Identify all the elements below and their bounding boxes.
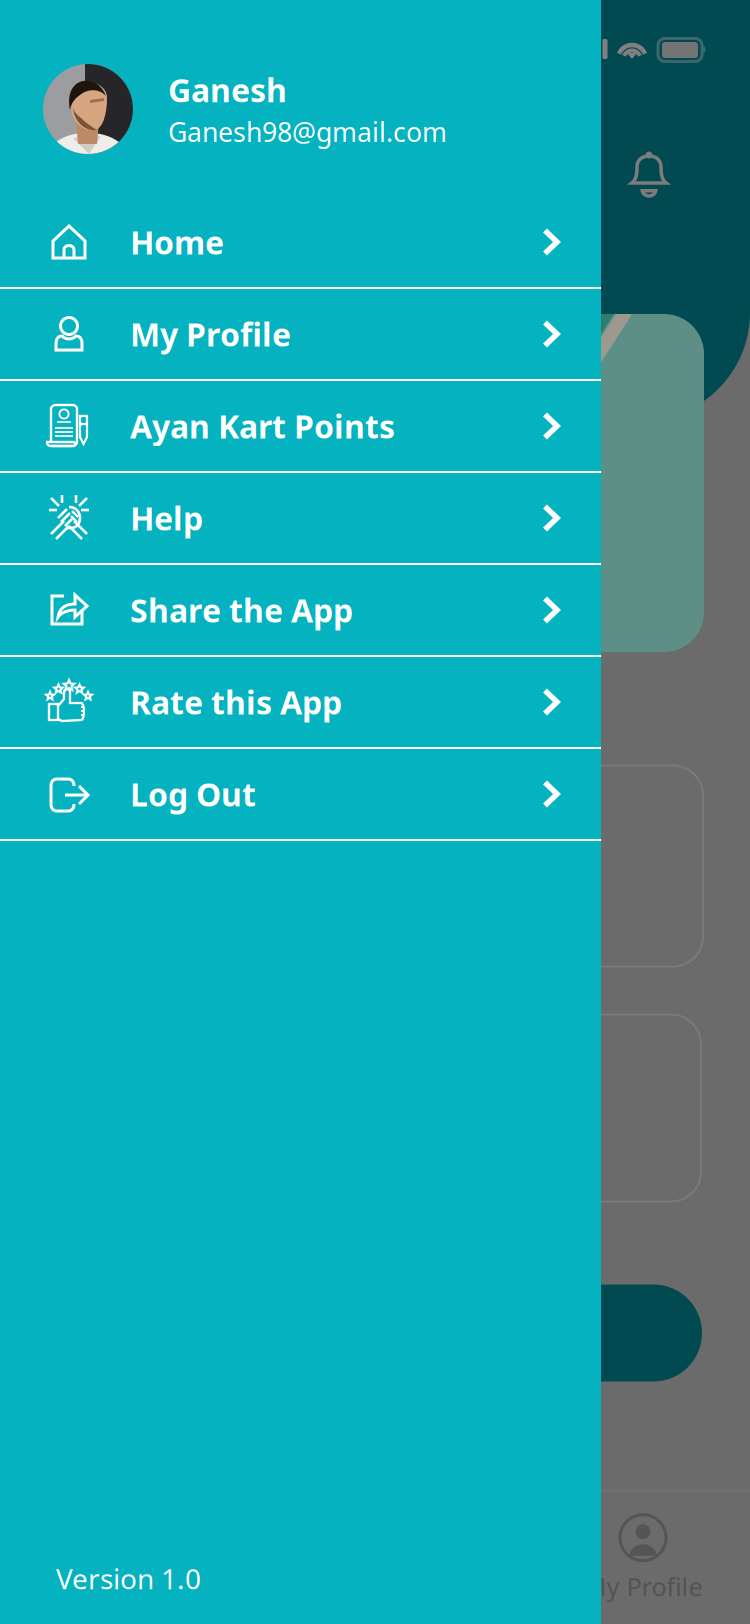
staticText: Ganesh <box>168 68 287 111</box>
staticText: Home <box>130 221 224 263</box>
button[interactable]: My Profile <box>568 1512 718 1604</box>
staticText: Ganesh98@gmail.com <box>168 114 447 149</box>
staticText: Help <box>130 497 203 539</box>
staticText: Share the App <box>130 589 353 631</box>
staticText: My Profile <box>130 313 291 355</box>
staticText: Ayan Kart Points <box>130 405 395 447</box>
staticText: Log Out <box>130 773 256 815</box>
button[interactable]: Ayan Kart Points <box>0 381 601 473</box>
button[interactable]: Home <box>0 197 601 289</box>
button[interactable]: My Profile <box>0 289 601 381</box>
button[interactable]: Help <box>0 473 601 565</box>
staticText: Rate this App <box>130 681 342 723</box>
staticText: Version 1.0 <box>56 1560 201 1597</box>
button[interactable]: Share the App <box>0 565 601 657</box>
button[interactable]: Log Out <box>0 749 601 841</box>
button[interactable]: Rate this App <box>0 657 601 749</box>
staticText: My Profile <box>583 1570 702 1603</box>
